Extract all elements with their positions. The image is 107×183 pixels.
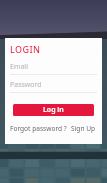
button[interactable]: Forgot password ? — [10, 124, 67, 133]
button[interactable]: Password — [10, 80, 97, 93]
staticText: LOGIN — [10, 43, 41, 55]
button[interactable]: Email — [10, 62, 97, 75]
staticText: Email — [10, 62, 28, 72]
button[interactable]: Log in — [13, 104, 94, 116]
staticText: Log in — [43, 105, 64, 115]
button[interactable]: Sign Up — [71, 124, 96, 133]
staticText: Password — [10, 80, 42, 90]
